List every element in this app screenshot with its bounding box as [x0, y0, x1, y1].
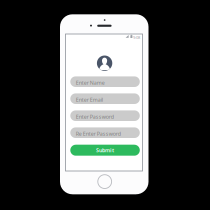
button[interactable]: Re Enter Password — [70, 127, 140, 138]
button[interactable]: Enter Name — [70, 76, 140, 87]
button[interactable]: Enter Password — [70, 110, 140, 121]
staticText: Submit — [96, 147, 114, 154]
staticText: Enter Password — [76, 113, 114, 120]
button[interactable]: Submit — [70, 145, 140, 156]
staticText: Re Enter Password — [76, 130, 121, 137]
staticText: 9:08 — [133, 35, 140, 40]
staticText: Enter Email — [76, 96, 103, 103]
staticText: Enter Name — [76, 79, 105, 86]
button[interactable]: Enter Email — [70, 93, 140, 104]
